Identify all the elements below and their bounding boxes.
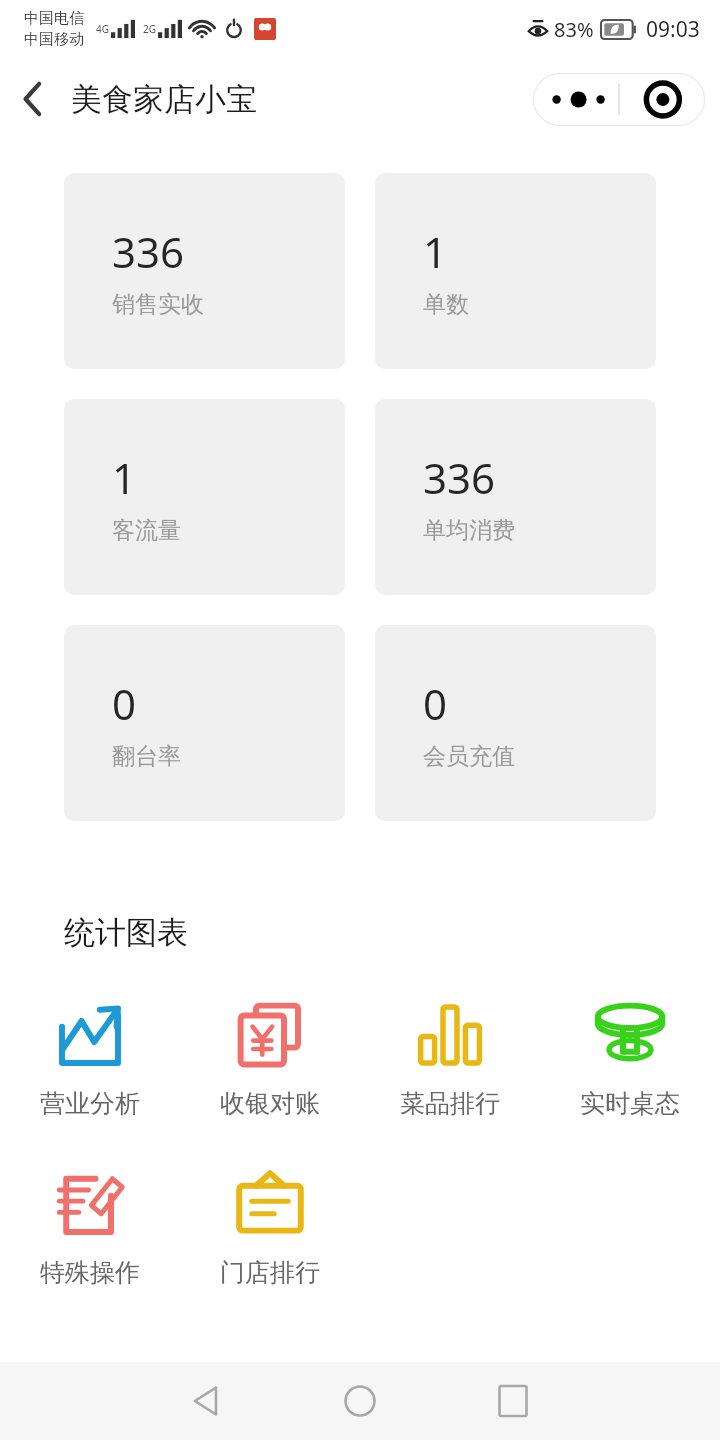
staticText: 单数: [423, 290, 469, 319]
staticText: 09:03: [646, 15, 700, 44]
staticText: 1: [423, 223, 448, 280]
staticText: 菜品排行: [400, 1088, 500, 1119]
staticText: 0: [112, 675, 137, 732]
button[interactable]: 菜品排行: [360, 994, 540, 1125]
button[interactable]: Back: [172, 1366, 242, 1436]
staticText: 1: [112, 449, 137, 506]
staticText: 收银对账: [220, 1088, 320, 1119]
button[interactable]: 营业分析: [0, 994, 180, 1125]
button[interactable]: 0: [375, 625, 656, 821]
staticText: 翻台率: [112, 742, 181, 771]
button[interactable]: 0: [64, 625, 345, 821]
button[interactable]: 1: [375, 173, 656, 369]
staticText: 实时桌态: [580, 1088, 680, 1119]
staticText: 单均消费: [423, 516, 515, 545]
staticText: 销售实收: [112, 290, 204, 319]
staticText: 客流量: [112, 516, 181, 545]
button[interactable]: 收银对账: [180, 994, 360, 1125]
staticText: 会员充值: [423, 742, 515, 771]
staticText: 4G: [96, 22, 109, 36]
staticText: 中国电信: [24, 9, 84, 28]
button[interactable]: 门店排行: [180, 1163, 360, 1294]
staticText: 门店排行: [220, 1257, 320, 1288]
staticText: 83%: [554, 16, 594, 43]
staticText: 营业分析: [40, 1088, 140, 1119]
button[interactable]: 实时桌态: [540, 994, 720, 1125]
staticText: 2G: [143, 22, 156, 36]
staticText: 336: [112, 223, 185, 280]
staticText: 0: [423, 675, 448, 732]
button[interactable]: 336: [64, 173, 345, 369]
staticText: 中国移动: [24, 30, 84, 49]
staticText: 特殊操作: [40, 1257, 140, 1288]
button[interactable]: 336: [375, 399, 656, 595]
button[interactable]: Menu and close mini program: [533, 73, 705, 126]
button[interactable]: Recent apps: [478, 1366, 548, 1436]
staticText: 统计图表: [64, 913, 188, 952]
button[interactable]: 1: [64, 399, 345, 595]
staticText: 336: [423, 449, 496, 506]
button[interactable]: 特殊操作: [0, 1163, 180, 1294]
staticText: 美食家店小宝: [71, 80, 257, 119]
button[interactable]: Home: [325, 1366, 395, 1436]
button[interactable]: Back: [0, 70, 54, 128]
